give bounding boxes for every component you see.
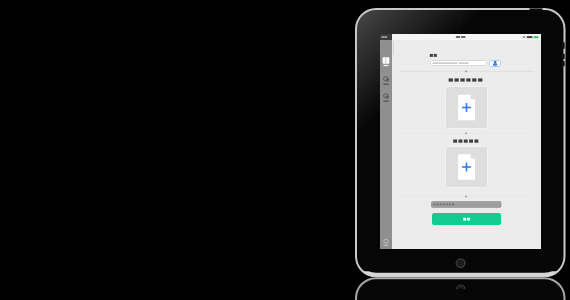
button[interactable] <box>430 60 487 66</box>
button[interactable] <box>432 213 501 225</box>
button[interactable] <box>380 236 392 248</box>
button[interactable] <box>380 74 392 87</box>
button[interactable] <box>380 55 392 68</box>
button[interactable] <box>445 86 488 129</box>
button[interactable] <box>445 146 488 188</box>
button[interactable] <box>489 60 501 67</box>
button[interactable] <box>380 91 392 104</box>
